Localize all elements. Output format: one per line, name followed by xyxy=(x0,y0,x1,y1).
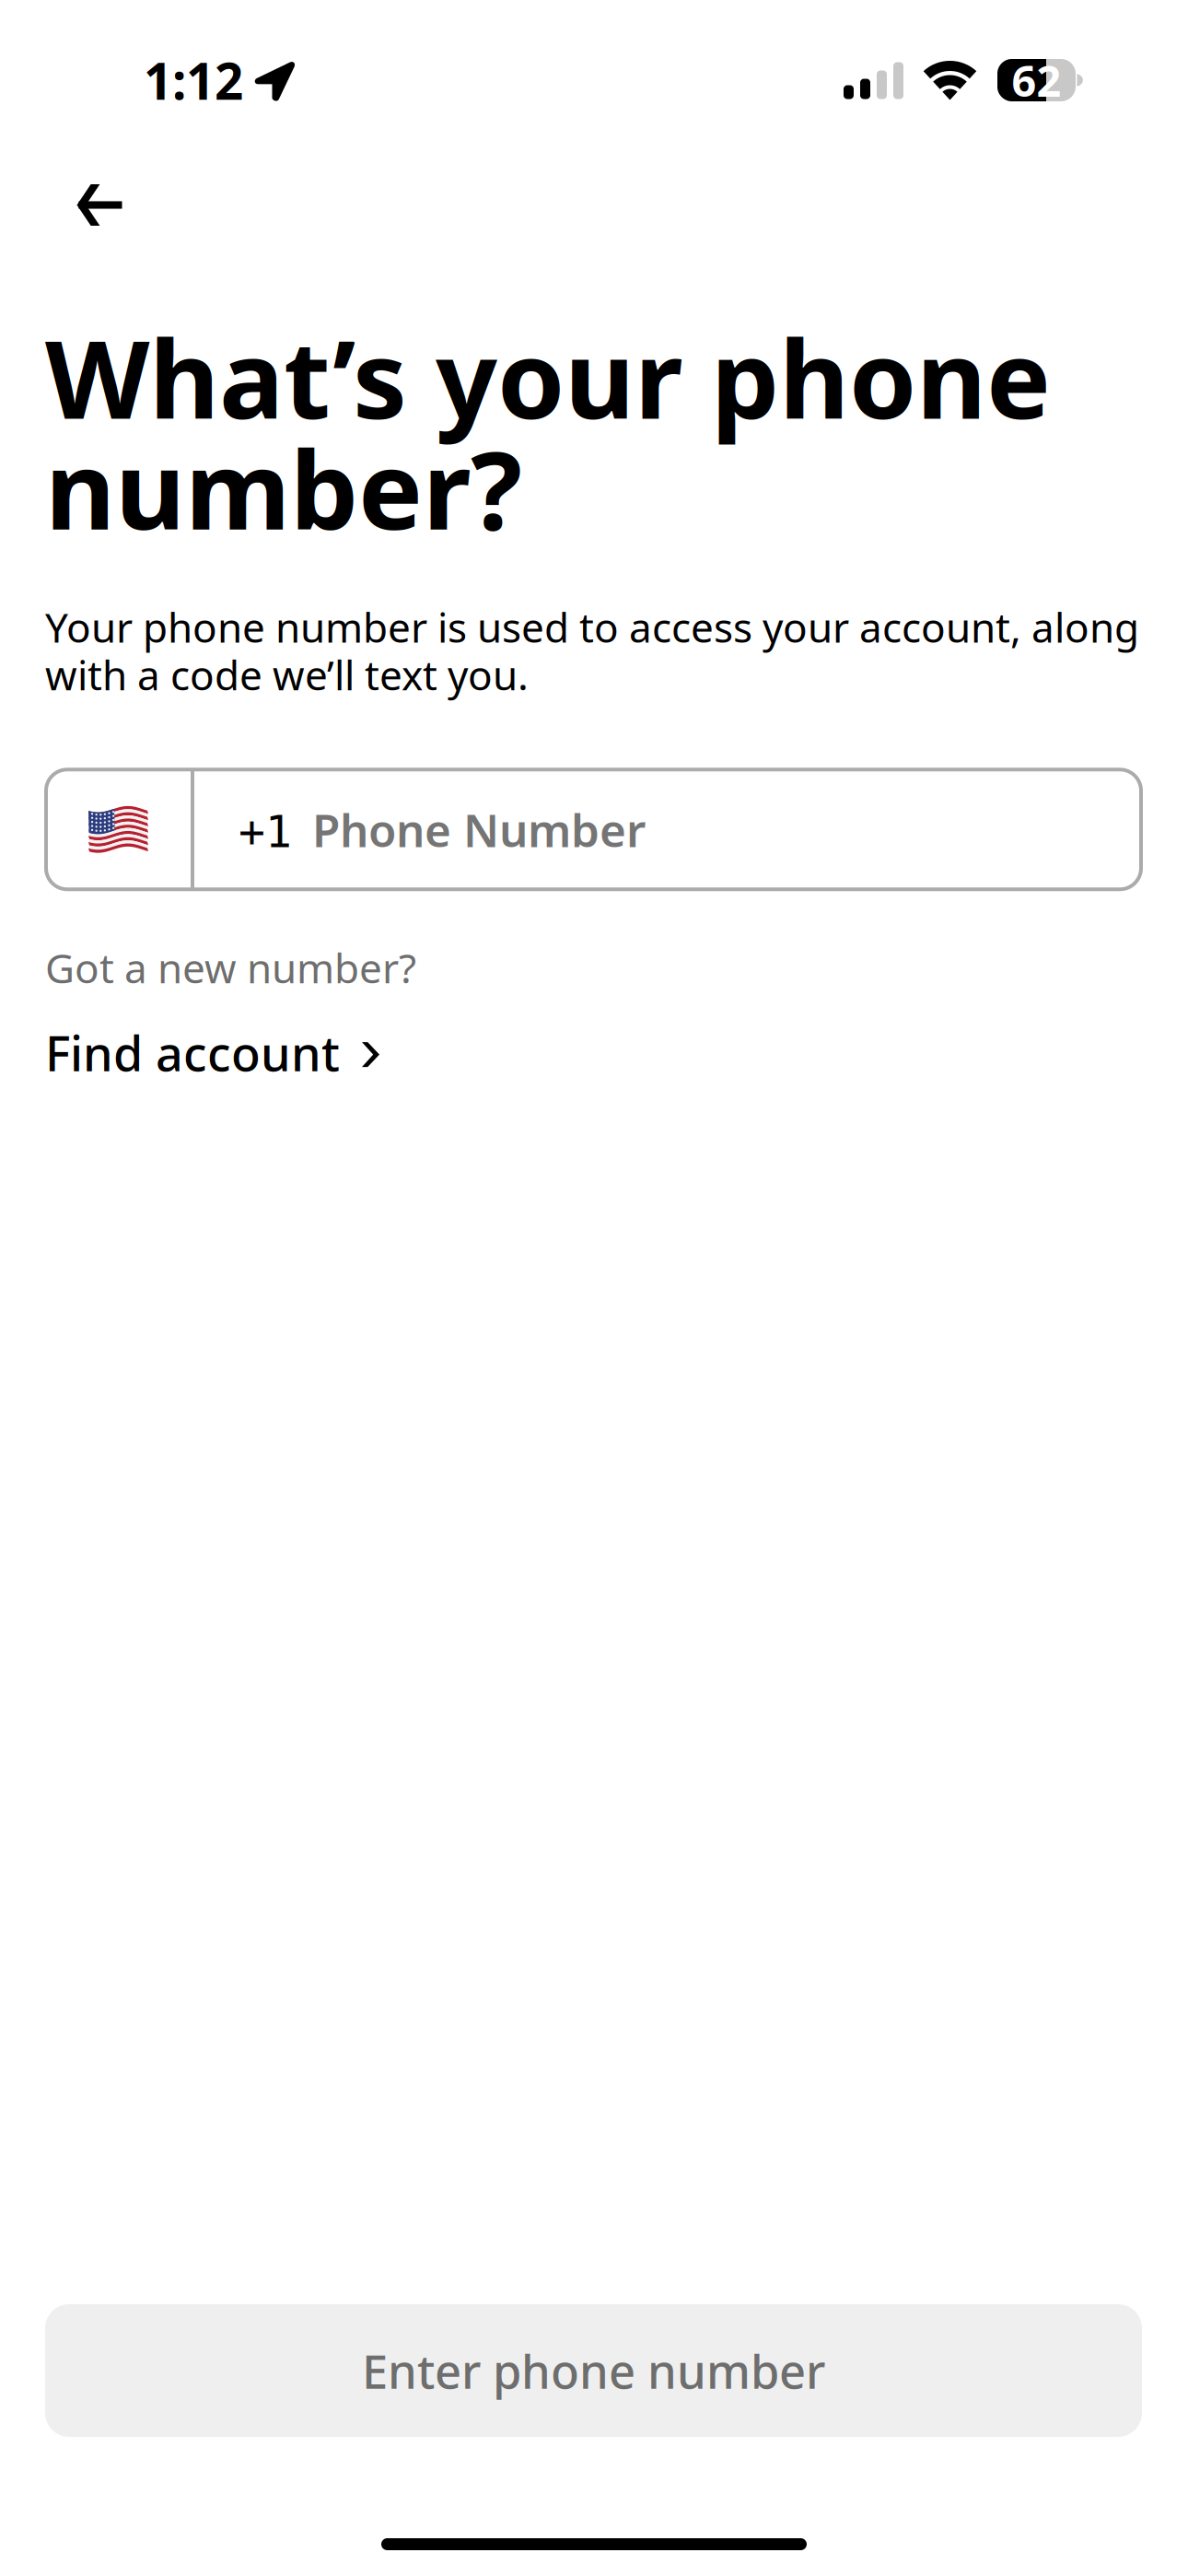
staticText: Enter phone number xyxy=(362,2339,825,2402)
staticText: What’s your phone number? xyxy=(45,322,1051,543)
button[interactable]: Enter phone number xyxy=(45,2304,1142,2437)
button[interactable]: Back xyxy=(61,166,138,244)
staticText: Find account xyxy=(45,1020,340,1085)
staticText: +1 xyxy=(239,806,292,858)
staticText: Got a new number? xyxy=(45,940,416,995)
staticText: Your phone number is used to access your… xyxy=(45,603,1139,699)
staticText: 1:12 xyxy=(144,46,243,115)
button[interactable]: Find account xyxy=(45,1007,379,1098)
button[interactable]: +1 xyxy=(46,770,1141,889)
staticText: 62 xyxy=(1012,51,1061,109)
staticText: Phone Number xyxy=(312,799,646,860)
